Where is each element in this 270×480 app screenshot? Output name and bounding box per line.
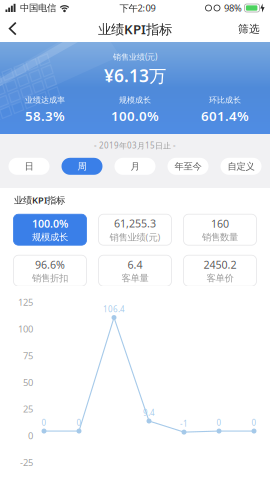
button[interactable]: 周 (61, 158, 102, 175)
button[interactable]: 160 (183, 214, 256, 245)
staticText: 销售业绩(元) (109, 231, 160, 243)
staticText: 100.0% (32, 217, 68, 231)
staticText: 0 (41, 417, 46, 428)
button[interactable]: 6.4 (98, 255, 171, 286)
staticText: 98% (224, 2, 242, 14)
staticText: 客单量 (121, 272, 148, 284)
button[interactable]: 96.6% (13, 255, 86, 286)
staticText: ¥6.13万 (104, 64, 166, 87)
staticText: 58.3% (25, 107, 65, 125)
staticText: 106.4 (103, 304, 125, 314)
staticText: 销售业绩(元) (113, 51, 157, 62)
button[interactable]: 筛选 (228, 16, 270, 42)
button[interactable]: 月 (114, 158, 155, 175)
staticText: 筛选 (238, 22, 260, 35)
staticText: 61,255.3 (114, 216, 156, 230)
staticText: 销售折扣 (32, 272, 68, 284)
button[interactable]: 2450.2 (183, 255, 256, 286)
staticText: -25 (20, 456, 33, 468)
staticText: 业绩KPI指标 (14, 194, 65, 206)
staticText: 日 (24, 161, 33, 172)
staticText: 客单价 (206, 272, 233, 284)
staticText: 月 (130, 161, 139, 172)
button[interactable]: 年至今 (167, 158, 208, 175)
staticText: 0 (76, 417, 81, 428)
staticText: 0 (216, 417, 221, 428)
staticText: 环比成长 (209, 95, 241, 105)
staticText: - 2019年03月15日止 - (94, 140, 176, 151)
staticText: 6.4 (127, 258, 142, 272)
staticText: 规模成长 (32, 231, 68, 243)
staticText: 自定义 (227, 161, 254, 172)
staticText: 年至今 (174, 161, 201, 172)
staticText: 业绩KPI指标 (98, 20, 172, 38)
button[interactable]: 100.0% (13, 214, 86, 245)
staticText: 0 (251, 417, 256, 428)
button[interactable]: 日 (8, 158, 49, 175)
staticText: 96.6% (35, 258, 65, 272)
staticText: 50 (23, 376, 33, 388)
staticText: 业绩达成率 (25, 95, 65, 105)
staticText: -1 (180, 418, 188, 429)
staticText: 中国电信 (20, 2, 56, 14)
staticText: 125 (18, 296, 33, 308)
staticText: 下午2:09 (119, 2, 155, 14)
staticText: 2450.2 (203, 258, 236, 272)
staticText: 160 (211, 217, 229, 231)
staticText: 周 (77, 161, 86, 172)
staticText: 9.4 (143, 407, 155, 418)
staticText: 销售数量 (202, 231, 238, 243)
staticText: 0 (28, 429, 33, 442)
staticText: 100 (18, 323, 33, 335)
staticText: 规模成长 (119, 95, 151, 105)
staticText: 601.4% (201, 107, 249, 125)
button[interactable]: 61,255.3 (98, 214, 171, 245)
staticText: 100.0% (111, 107, 159, 125)
staticText: 75 (23, 349, 33, 362)
staticText: 25 (23, 403, 33, 415)
button[interactable]: 返回 (0, 16, 29, 42)
button[interactable]: 自定义 (220, 158, 261, 175)
